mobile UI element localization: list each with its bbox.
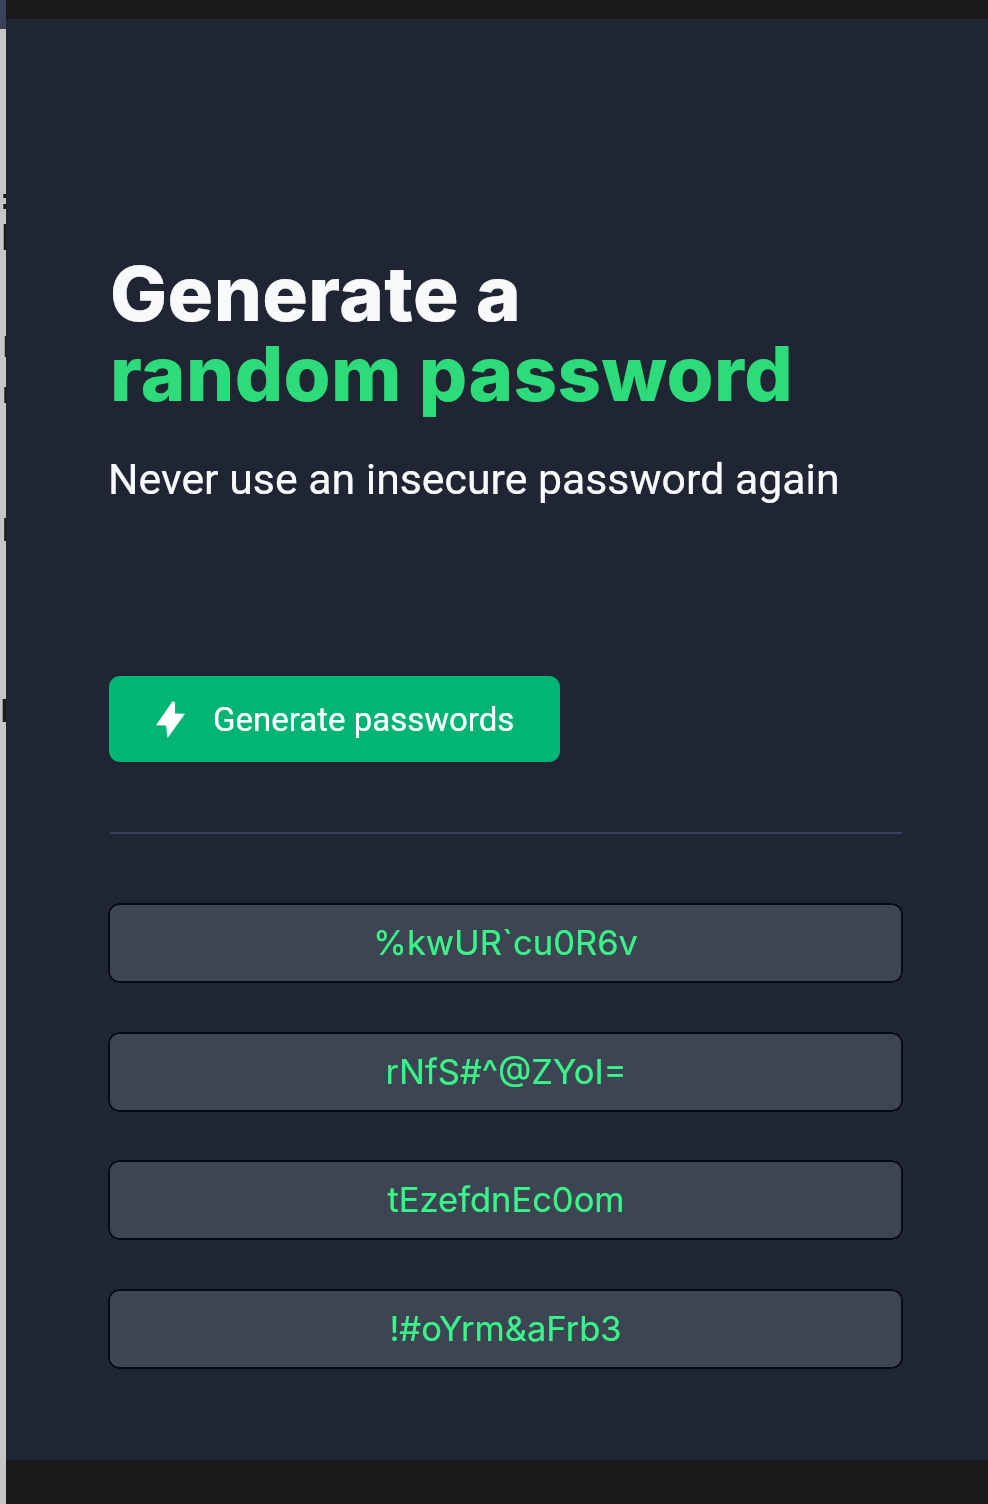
other: Generate: [156, 701, 185, 738]
staticText: tEzefdnEc0om: [387, 1179, 625, 1221]
staticText: random password: [110, 327, 794, 419]
staticText: Generate a: [110, 247, 522, 339]
staticText: !#oYrm&aFrb3: [389, 1308, 622, 1350]
staticText: rNfS#^@ZYoI=: [385, 1051, 627, 1093]
button[interactable]: tEzefdnEc0om: [108, 1160, 903, 1240]
staticText: %kwUR`cu0R6v: [373, 922, 638, 964]
staticText: Never use an insecure password again: [108, 454, 840, 504]
button[interactable]: rNfS#^@ZYoI=: [108, 1032, 903, 1112]
button[interactable]: !#oYrm&aFrb3: [108, 1289, 903, 1369]
staticText: Generate passwords: [213, 700, 515, 739]
button[interactable]: Generate: [109, 676, 560, 762]
button[interactable]: %kwUR`cu0R6v: [108, 903, 903, 983]
